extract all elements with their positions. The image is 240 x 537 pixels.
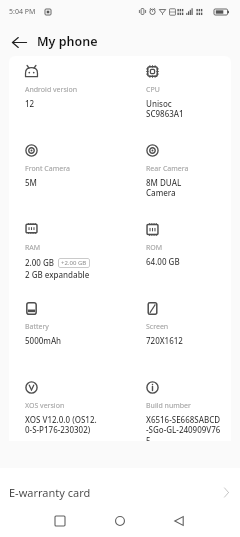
staticText: 2 GB expandable — [25, 269, 90, 280]
staticText: Unisoc SC9863A1 — [146, 98, 184, 120]
staticText: X6516-SE668SABCD -SGo-GL-240909V76 5 — [146, 414, 221, 447]
staticText: Screen — [146, 322, 169, 332]
staticText: XOS version — [25, 401, 65, 411]
staticText: My phone — [37, 33, 98, 50]
staticText: +2.00 GB — [61, 259, 87, 267]
staticText: 5:04 PM — [9, 7, 36, 17]
staticText: CPU — [146, 85, 160, 95]
button[interactable]: E-warranty card — [0, 468, 240, 505]
staticText: Android version — [25, 85, 78, 95]
staticText: 720X1612 — [146, 335, 183, 346]
staticText: ROM — [146, 243, 163, 253]
staticText: 8M DUAL Camera — [146, 177, 182, 199]
staticText: 64.00 GB — [146, 256, 180, 267]
staticText: Front Camera — [25, 164, 70, 174]
staticText: 12 — [25, 98, 35, 109]
button[interactable]: Home — [106, 507, 134, 535]
staticText: Rear Camera — [146, 164, 189, 174]
staticText: XOS V12.0.0 (OS12. 0-S-P176-230302) — [25, 414, 97, 436]
staticText: Build number — [146, 401, 191, 411]
staticText: E-warranty card — [9, 485, 91, 500]
button[interactable]: Recents — [46, 505, 240, 537]
staticText: 2.00 GB — [25, 257, 55, 268]
button[interactable]: Back — [165, 507, 193, 535]
staticText: Battery — [25, 322, 49, 332]
staticText: 5000mAh — [25, 335, 62, 346]
button[interactable]: Back — [5, 28, 33, 56]
staticText: 5M — [25, 177, 37, 188]
button[interactable]: Recents — [46, 507, 74, 535]
staticText: RAM — [25, 243, 41, 253]
